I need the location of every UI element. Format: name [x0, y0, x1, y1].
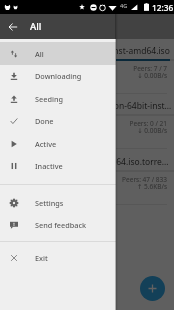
- button[interactable]: Active: [0, 132, 116, 155]
- button[interactable]: Send feedback: [0, 213, 116, 236]
- button[interactable]: kali-linux-2019.4-live-daemon-64bit-inst…: [0, 94, 174, 149]
- staticText: Peers: 47 / 833: [0, 175, 167, 184]
- staticText: ubuntu-19.10-desktop-amd64.iso.torrent.d…: [7, 156, 173, 168]
- staticText: ↑ 5.6KB/s: [0, 182, 167, 191]
- button[interactable]: Back: [0, 14, 25, 39]
- staticText: Inactive: [35, 161, 63, 171]
- button[interactable]: debian-testing-amd64-netinst-amd64.iso: [0, 39, 174, 94]
- button[interactable]: Downloading: [0, 64, 116, 87]
- staticText: Done: [35, 116, 54, 126]
- button[interactable]: Inactive: [0, 154, 116, 177]
- staticText: Seeding: [35, 94, 63, 104]
- staticText: kali-linux-2019.4-live-daemon-64bit-inst…: [7, 100, 173, 112]
- staticText: ↓ 0.00B/s: [0, 126, 167, 135]
- button[interactable]: Seeding: [0, 87, 116, 110]
- staticText: Active: [35, 139, 57, 149]
- staticText: Send feedback: [35, 220, 87, 230]
- button[interactable]: [0, 0, 174, 310]
- staticText: debian-testing-amd64-netinst-amd64.iso: [7, 45, 173, 57]
- staticText: All: [35, 49, 44, 59]
- staticText: Settings: [35, 198, 64, 208]
- staticText: Downloading: [35, 71, 82, 81]
- button[interactable]: ubuntu-19.10-desktop-amd64.iso.torrent.d…: [0, 150, 174, 205]
- button[interactable]: Add torrent: [140, 276, 165, 301]
- staticText: Peers: 7 / 7: [0, 64, 167, 73]
- staticText: All: [30, 20, 42, 33]
- staticText: Exit: [35, 253, 48, 263]
- button[interactable]: Done: [0, 109, 116, 132]
- staticText: 4G: [120, 2, 128, 9]
- staticText: ↓ 0.00B/s: [0, 71, 167, 80]
- staticText: Peers: 0 / 21: [0, 119, 167, 128]
- staticText: 12:36: [152, 2, 174, 13]
- button[interactable]: All: [0, 42, 116, 65]
- button[interactable]: Settings: [0, 191, 116, 214]
- button[interactable]: Exit: [0, 246, 116, 269]
